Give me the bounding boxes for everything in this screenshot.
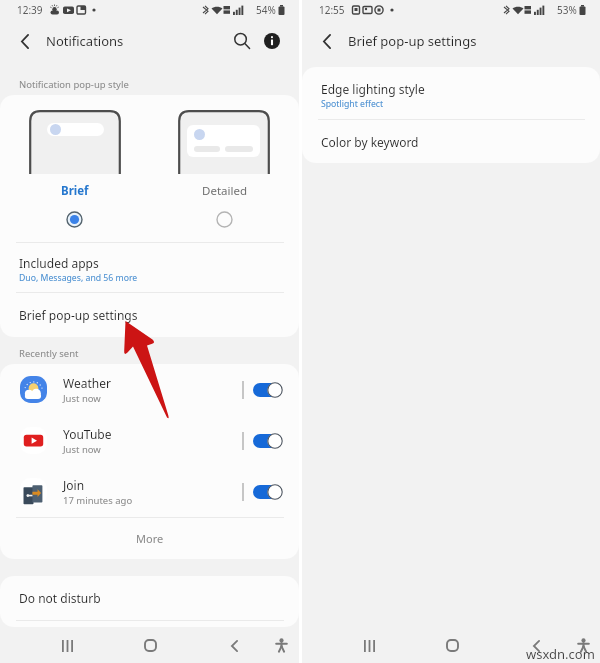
- staticText: Brief pop-up settings: [19, 307, 138, 323]
- button[interactable]: Toggle Weather: [253, 382, 283, 398]
- button[interactable]: Recent apps: [45, 628, 89, 663]
- staticText: 12:39: [17, 3, 43, 17]
- staticText: 53%: [557, 3, 577, 17]
- staticText: More: [136, 531, 164, 546]
- button[interactable]: Brief: [66, 211, 83, 228]
- button[interactable]: Brief: [0, 95, 149, 242]
- staticText: Notification pop-up style: [19, 78, 129, 91]
- staticText: wsxdn.com: [526, 645, 595, 663]
- staticText: Included apps: [19, 255, 99, 271]
- staticText: Brief: [61, 183, 89, 199]
- staticText: Just now: [63, 443, 101, 456]
- button[interactable]: Navigate up: [315, 29, 339, 53]
- staticText: 54%: [256, 3, 276, 17]
- button[interactable]: Join: [0, 466, 299, 517]
- staticText: 12:55: [319, 3, 345, 17]
- staticText: Duo, Messages, and 56 more: [19, 272, 138, 284]
- button[interactable]: Detailed: [216, 211, 233, 228]
- staticText: Weather: [63, 375, 111, 391]
- button[interactable]: Navigate up: [13, 29, 37, 53]
- button[interactable]: Recent apps: [347, 628, 391, 663]
- staticText: Detailed: [202, 183, 247, 199]
- staticText: YouTube: [63, 426, 112, 442]
- button[interactable]: Detailed: [149, 95, 299, 242]
- button[interactable]: Home: [128, 628, 172, 663]
- staticText: Recently sent: [19, 347, 79, 360]
- staticText: Color by keyword: [321, 134, 419, 150]
- button[interactable]: Information: [259, 28, 285, 54]
- staticText: 17 minutes ago: [63, 494, 133, 507]
- button[interactable]: Do not disturb: [0, 576, 299, 620]
- staticText: Brief pop-up settings: [348, 32, 477, 50]
- button[interactable]: Back: [514, 628, 558, 663]
- staticText: Join: [63, 477, 85, 493]
- button[interactable]: Edge lighting style: [302, 67, 600, 119]
- button[interactable]: Included apps: [0, 243, 299, 292]
- button[interactable]: Brief pop-up settings: [0, 293, 299, 337]
- button[interactable]: Accessibility: [561, 628, 600, 663]
- staticText: Do not disturb: [19, 590, 101, 606]
- button[interactable]: Weather: [0, 364, 299, 415]
- button[interactable]: Search: [229, 28, 255, 54]
- button[interactable]: Accessibility: [259, 628, 303, 663]
- button[interactable]: Toggle YouTube: [253, 433, 283, 449]
- button[interactable]: More: [0, 518, 299, 559]
- staticText: Spotlight effect: [321, 98, 384, 110]
- button[interactable]: Color by keyword: [302, 120, 600, 163]
- button[interactable]: YouTube: [0, 415, 299, 466]
- staticText: Notifications: [46, 32, 124, 50]
- button[interactable]: Toggle Join: [253, 484, 283, 500]
- button[interactable]: Back: [212, 628, 256, 663]
- button[interactable]: Home: [430, 628, 474, 663]
- staticText: Edge lighting style: [321, 81, 425, 97]
- staticText: Just now: [63, 392, 101, 405]
